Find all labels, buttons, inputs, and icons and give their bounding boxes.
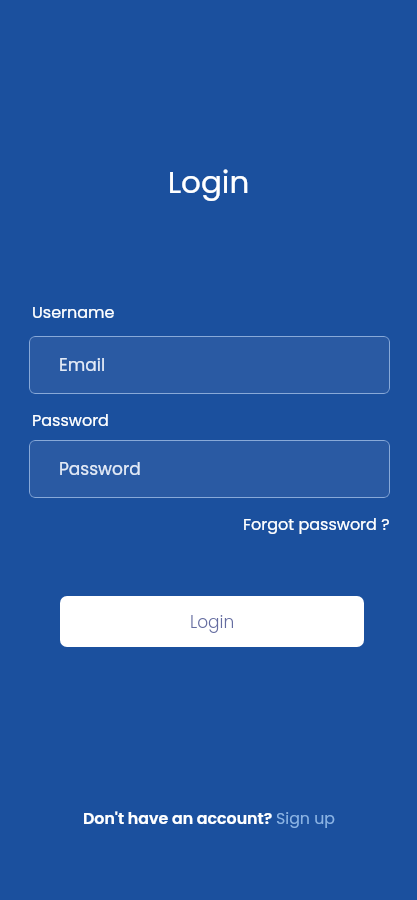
staticText: Don't have an account? xyxy=(83,807,276,829)
button[interactable]: Forgot password ? xyxy=(243,513,390,535)
staticText: Forgot password ? xyxy=(243,513,390,535)
button[interactable]: Sign up xyxy=(276,807,335,829)
staticText: Login xyxy=(0,160,417,203)
staticText: Email xyxy=(59,353,106,377)
staticText: Sign up xyxy=(276,807,335,829)
staticText: Username xyxy=(32,301,115,323)
staticText: Password xyxy=(59,457,141,481)
staticText: Password xyxy=(32,409,109,431)
button[interactable]: Login xyxy=(60,596,364,647)
button[interactable]: Username input field xyxy=(29,336,390,394)
staticText: Login xyxy=(190,610,235,634)
button[interactable]: Password input field xyxy=(29,440,390,498)
